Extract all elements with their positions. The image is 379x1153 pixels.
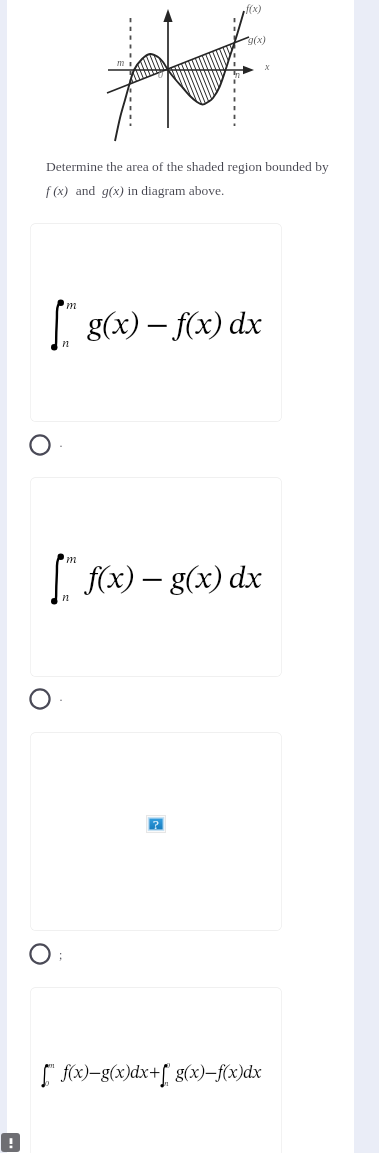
staticText: m: [66, 553, 77, 566]
staticText: x: [265, 61, 270, 72]
staticText: Determine the area of the shaded region …: [46, 159, 329, 174]
staticText: f(x): [246, 2, 262, 14]
staticText: n: [62, 591, 70, 604]
staticText: m: [117, 57, 125, 68]
button[interactable]: [30, 223, 282, 422]
staticText: 0: [158, 69, 163, 80]
staticText: g(x): [248, 33, 266, 45]
staticText: +: [149, 1065, 161, 1081]
staticText: 0: [166, 1062, 170, 1070]
button[interactable]: ;: [28, 942, 63, 966]
staticText: ·: [59, 693, 63, 706]
staticText: m: [66, 299, 77, 312]
staticText: ·: [59, 439, 63, 452]
button[interactable]: [30, 477, 282, 677]
button[interactable]: [30, 732, 282, 931]
staticText: n: [164, 1080, 169, 1088]
staticText: g(x)−f(x)dx: [176, 1064, 261, 1082]
staticText: n: [62, 337, 70, 350]
staticText: ;: [59, 948, 63, 961]
button[interactable]: Report a problem: [1, 1133, 20, 1152]
staticText: f(x) − g(x) dx: [88, 564, 261, 596]
staticText: m: [48, 1062, 55, 1070]
staticText: g(x) − f(x) dx: [88, 310, 261, 342]
staticText: f(x)−g(x)dx: [63, 1064, 148, 1082]
button[interactable]: ·: [28, 433, 63, 457]
staticText: in diagram above.: [124, 183, 225, 198]
staticText: ?: [153, 817, 159, 831]
button[interactable]: ·: [28, 687, 63, 711]
button[interactable]: [30, 987, 282, 1153]
staticText: g(x): [102, 183, 124, 198]
staticText: n: [235, 69, 240, 80]
staticText: f (x): [46, 183, 69, 198]
staticText: and: [69, 183, 102, 198]
staticText: 0: [45, 1080, 49, 1088]
